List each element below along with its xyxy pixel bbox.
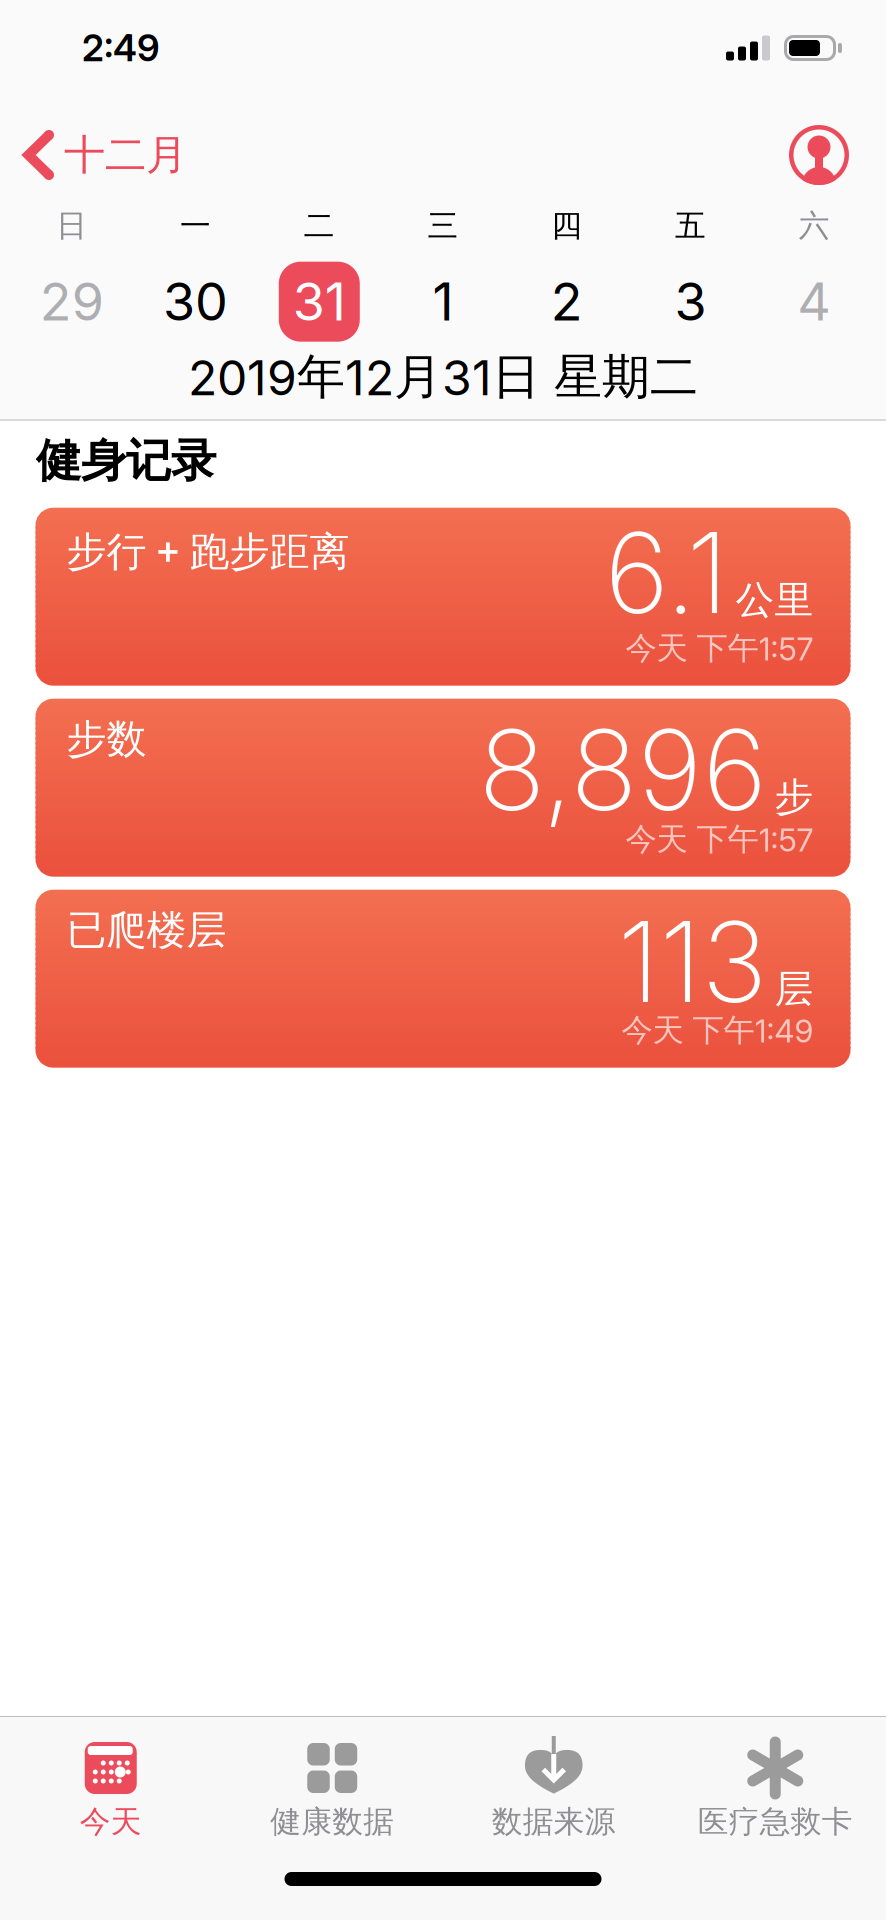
staticText: 步数 <box>66 715 146 764</box>
staticText: 4 <box>797 270 831 333</box>
staticText: 8,896 <box>478 703 767 837</box>
button[interactable]: 今天 <box>0 1739 221 1841</box>
button[interactable]: 2 <box>505 262 629 342</box>
staticText: 步行 + 跑步距离 <box>66 524 349 577</box>
staticText: 3 <box>674 270 706 333</box>
staticText: 步 <box>774 773 813 821</box>
staticText: 今天 下午1:49 <box>621 1011 813 1050</box>
button[interactable]: 3 <box>629 262 752 342</box>
staticText: 数据来源 <box>492 1803 616 1841</box>
staticText: 五 <box>675 207 706 245</box>
staticText: 公里 <box>735 576 813 624</box>
staticText: 六 <box>799 207 830 245</box>
staticText: 2:49 <box>82 26 160 70</box>
staticText: 三 <box>427 207 458 245</box>
staticText: 已爬楼层 <box>66 906 226 955</box>
button[interactable]: 步数 <box>35 699 850 877</box>
button[interactable]: 4 <box>752 262 876 342</box>
button[interactable]: 医疗急救卡 <box>664 1739 886 1841</box>
staticText: 健康数据 <box>270 1803 394 1841</box>
staticText: 6.1 <box>604 506 728 640</box>
staticText: 四 <box>551 207 582 245</box>
staticText: 医疗急救卡 <box>698 1803 853 1841</box>
staticText: 30 <box>163 270 228 333</box>
button[interactable]: 29 <box>10 262 134 342</box>
staticText: 十二月 <box>64 130 187 180</box>
staticText: 一 <box>180 207 211 245</box>
staticText: 二 <box>304 207 335 245</box>
staticText: 今天 下午1:57 <box>625 820 813 859</box>
staticText: 今天 <box>80 1803 142 1841</box>
button[interactable]: 31 <box>257 262 381 342</box>
staticText: 层 <box>774 965 813 1013</box>
button[interactable]: 步行 + 跑步距离 <box>35 508 850 686</box>
staticText: 113 <box>617 895 767 1029</box>
staticText: 日 <box>56 207 87 245</box>
staticText: 健身记录 <box>36 433 216 489</box>
staticText: 2019年12月31日 星期二 <box>188 347 698 407</box>
button[interactable]: 1 <box>381 262 505 342</box>
staticText: 29 <box>40 270 104 333</box>
staticText: 31 <box>293 270 346 333</box>
button[interactable]: 个人资料 <box>789 125 849 185</box>
staticText: 2 <box>551 270 583 333</box>
button[interactable]: 返回 十二月 <box>22 130 187 180</box>
button[interactable]: 数据来源 <box>443 1739 664 1841</box>
button[interactable]: 健康数据 <box>221 1739 443 1841</box>
button[interactable]: 30 <box>134 262 257 342</box>
staticText: 1 <box>432 270 453 333</box>
staticText: 今天 下午1:57 <box>625 629 813 668</box>
button[interactable]: 已爬楼层 <box>35 890 850 1068</box>
